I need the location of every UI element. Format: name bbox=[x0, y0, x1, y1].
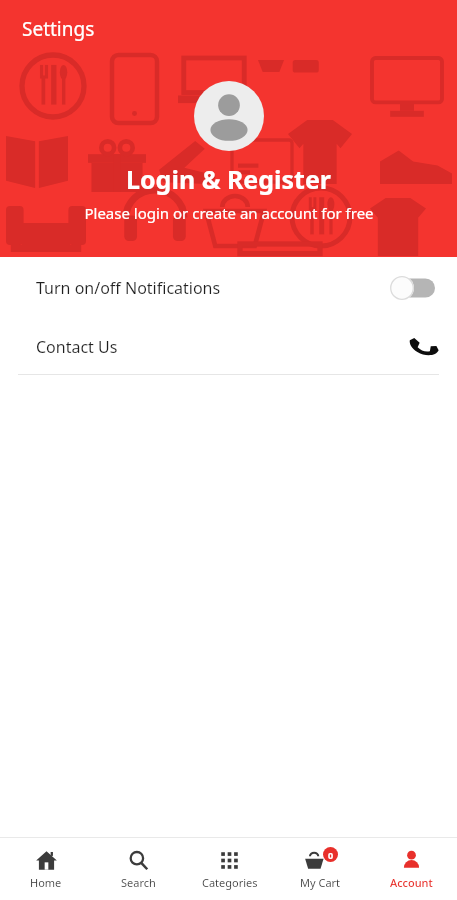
button[interactable]: Categories bbox=[184, 838, 275, 900]
button[interactable]: Account bbox=[366, 838, 457, 900]
staticText: 0 bbox=[328, 849, 334, 861]
staticText: Turn on/off Notifications bbox=[36, 277, 221, 299]
staticText: Settings bbox=[22, 16, 95, 42]
button[interactable]: Turn on/off Notifications bbox=[0, 257, 457, 319]
button[interactable]: Call us bbox=[407, 333, 435, 361]
staticText: Home bbox=[30, 875, 62, 890]
staticText: Account bbox=[390, 875, 433, 890]
staticText: Contact Us bbox=[36, 336, 118, 358]
staticText: Login & Register bbox=[126, 162, 331, 196]
staticText: My Cart bbox=[300, 875, 341, 890]
button[interactable]: Contact Us bbox=[0, 319, 457, 374]
button[interactable]: 0 bbox=[275, 838, 366, 900]
staticText: Please login or create an account for fr… bbox=[84, 203, 374, 223]
staticText: Search bbox=[121, 875, 156, 890]
button[interactable]: Home bbox=[0, 838, 92, 900]
button[interactable]: Toggle notifications bbox=[389, 276, 435, 300]
button[interactable]: Search bbox=[92, 838, 184, 900]
staticText: Categories bbox=[202, 875, 258, 890]
